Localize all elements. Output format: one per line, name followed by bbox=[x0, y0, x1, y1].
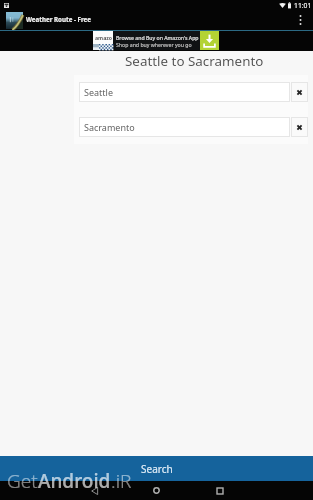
staticText: Sacramento bbox=[84, 121, 135, 133]
button[interactable]: Clear bbox=[291, 117, 308, 137]
staticText: Weather Route - Free bbox=[26, 15, 91, 23]
staticText: Android bbox=[38, 468, 111, 494]
button[interactable]: More options bbox=[290, 10, 310, 30]
button[interactable]: Home bbox=[143, 481, 169, 500]
staticText: Search bbox=[141, 462, 173, 476]
staticText: .iR bbox=[111, 468, 132, 494]
button[interactable]: Back bbox=[81, 481, 107, 500]
staticText: Get bbox=[7, 468, 38, 494]
button[interactable]: Search bbox=[0, 456, 313, 482]
button[interactable]: Clear bbox=[291, 82, 308, 102]
button[interactable]: Seattle bbox=[79, 82, 290, 102]
staticText: Browse and Buy on Amazon's App bbox=[116, 34, 199, 41]
button[interactable]: amazon bbox=[93, 31, 219, 50]
staticText: Seattle bbox=[84, 86, 113, 98]
staticText: Shop and buy wherever you go bbox=[116, 41, 192, 48]
staticText: amazon bbox=[95, 34, 115, 48]
button[interactable]: Recent apps bbox=[207, 481, 233, 500]
button[interactable]: Sacramento bbox=[79, 117, 290, 137]
staticText: Seattle to Sacramento bbox=[125, 52, 264, 70]
staticText: 11:01 bbox=[294, 1, 312, 10]
